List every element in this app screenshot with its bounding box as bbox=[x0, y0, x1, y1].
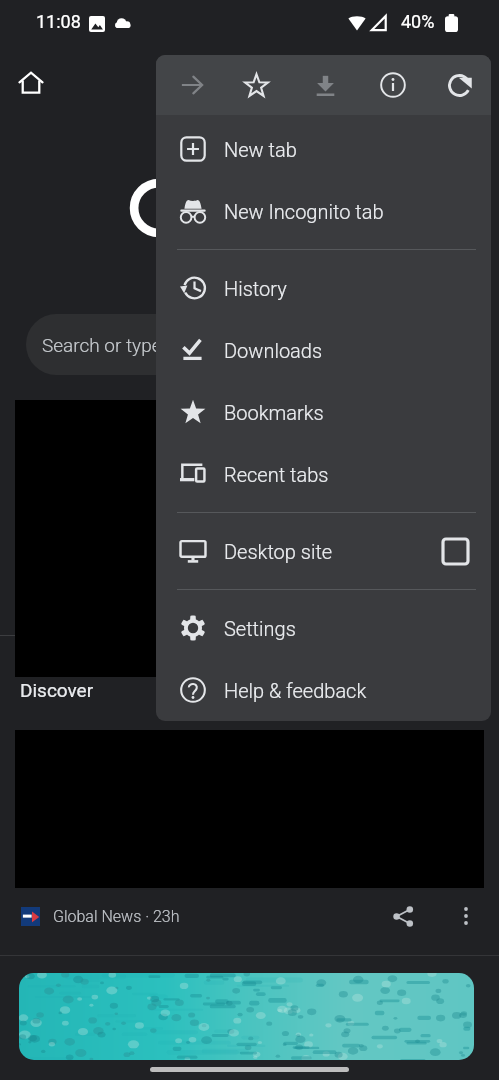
button[interactable]: Forward bbox=[169, 62, 215, 108]
staticText: 40% bbox=[401, 11, 435, 32]
staticText: Search or type web address bbox=[42, 334, 273, 356]
button[interactable]: Settings bbox=[156, 597, 491, 659]
staticText: Recent tabs bbox=[224, 463, 329, 486]
button[interactable]: History bbox=[156, 257, 491, 319]
button[interactable]: Help & feedback bbox=[156, 659, 491, 721]
button[interactable]: Page info bbox=[370, 62, 416, 108]
button[interactable]: More options bbox=[446, 896, 486, 936]
button[interactable]: Bookmark this page bbox=[233, 62, 279, 108]
button[interactable] bbox=[19, 973, 474, 1060]
staticText: Settings bbox=[224, 617, 296, 640]
button[interactable] bbox=[15, 400, 484, 677]
button[interactable]: New tab bbox=[156, 118, 491, 180]
button[interactable]: Download page bbox=[302, 62, 348, 108]
staticText: Discover bbox=[20, 679, 94, 701]
staticText: History bbox=[224, 277, 287, 300]
staticText: New tab bbox=[224, 138, 297, 161]
staticText: Help & feedback bbox=[224, 679, 367, 702]
staticText: New Incognito tab bbox=[224, 200, 384, 223]
staticText: Desktop site bbox=[224, 540, 333, 563]
button[interactable]: Home bbox=[9, 61, 53, 105]
button[interactable]: Recent tabs bbox=[156, 443, 491, 505]
button[interactable]: Search or type web address bbox=[26, 314, 474, 375]
staticText: Global News · 23h bbox=[53, 907, 180, 926]
button[interactable]: New Incognito tab bbox=[156, 180, 491, 242]
button[interactable]: Reload bbox=[436, 62, 482, 108]
button[interactable]: Bookmarks bbox=[156, 381, 491, 443]
staticText: Bookmarks bbox=[224, 401, 324, 424]
button[interactable]: Desktop site bbox=[156, 520, 491, 582]
button[interactable]: Share bbox=[383, 896, 423, 936]
staticText: 11:08 bbox=[36, 11, 81, 32]
staticText: Downloads bbox=[224, 339, 323, 362]
button[interactable]: Downloads bbox=[156, 319, 491, 381]
